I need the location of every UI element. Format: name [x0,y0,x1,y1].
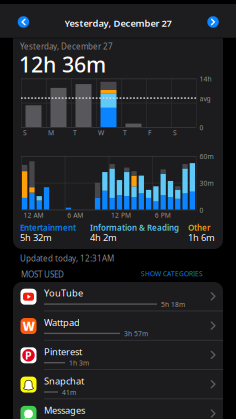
staticText: T [73,128,77,137]
staticText: Yesterday, December 27 [64,17,171,29]
staticText: 4h 2m [90,231,117,244]
button[interactable]: Messages [13,399,223,419]
staticText: 41m [62,388,76,397]
button[interactable]: Next Day [207,16,219,28]
staticText: S [23,128,27,137]
staticText: 3h 57m [124,329,148,338]
staticText: T [123,128,127,137]
staticText: 0 [199,206,203,215]
staticText: 1h 3m [69,359,89,367]
staticText: 6 AM [67,211,83,220]
staticText: 0 [199,123,203,132]
staticText: avg [199,94,210,103]
staticText: 5h 18m [161,300,185,309]
staticText: YouTube [44,287,83,299]
button[interactable]: Previous Day [18,16,29,28]
button[interactable]: P [13,341,223,369]
button[interactable]: YouTube [13,282,223,311]
staticText: Yesterday, December 27 [20,41,113,52]
staticText: 1h 6m [188,231,215,244]
staticText: 5h 32m [20,231,52,244]
staticText: W [22,318,34,334]
staticText: Messages [44,404,85,416]
staticText: 6 PM [155,211,171,220]
staticText: Pinterest [44,345,82,358]
staticText: MOST USED [21,269,64,280]
staticText: Entertainment [20,222,76,233]
staticText: P [25,348,32,362]
staticText: S [173,128,177,137]
button[interactable]: W [13,311,223,340]
button[interactable]: SHOW CATEGORIES [0,0,62,9]
staticText: 12 PM [111,211,131,220]
staticText: M [48,128,54,137]
staticText: 30m [199,179,213,188]
staticText: F [148,128,151,137]
staticText: Snapchat [44,375,84,387]
button[interactable]: Snapchat [13,370,223,398]
staticText: 14h [199,74,211,83]
staticText: Other [188,222,210,233]
staticText: 60m [199,152,213,161]
staticText: 12 AM [23,211,43,220]
staticText: 12h 36m [19,50,106,78]
staticText: Information & Reading [90,222,179,233]
staticText: W [98,128,104,137]
staticText: Wattpad [44,316,80,328]
staticText: SHOW CATEGORIES [141,269,203,278]
staticText: Updated today, 12:31AM [20,253,114,264]
